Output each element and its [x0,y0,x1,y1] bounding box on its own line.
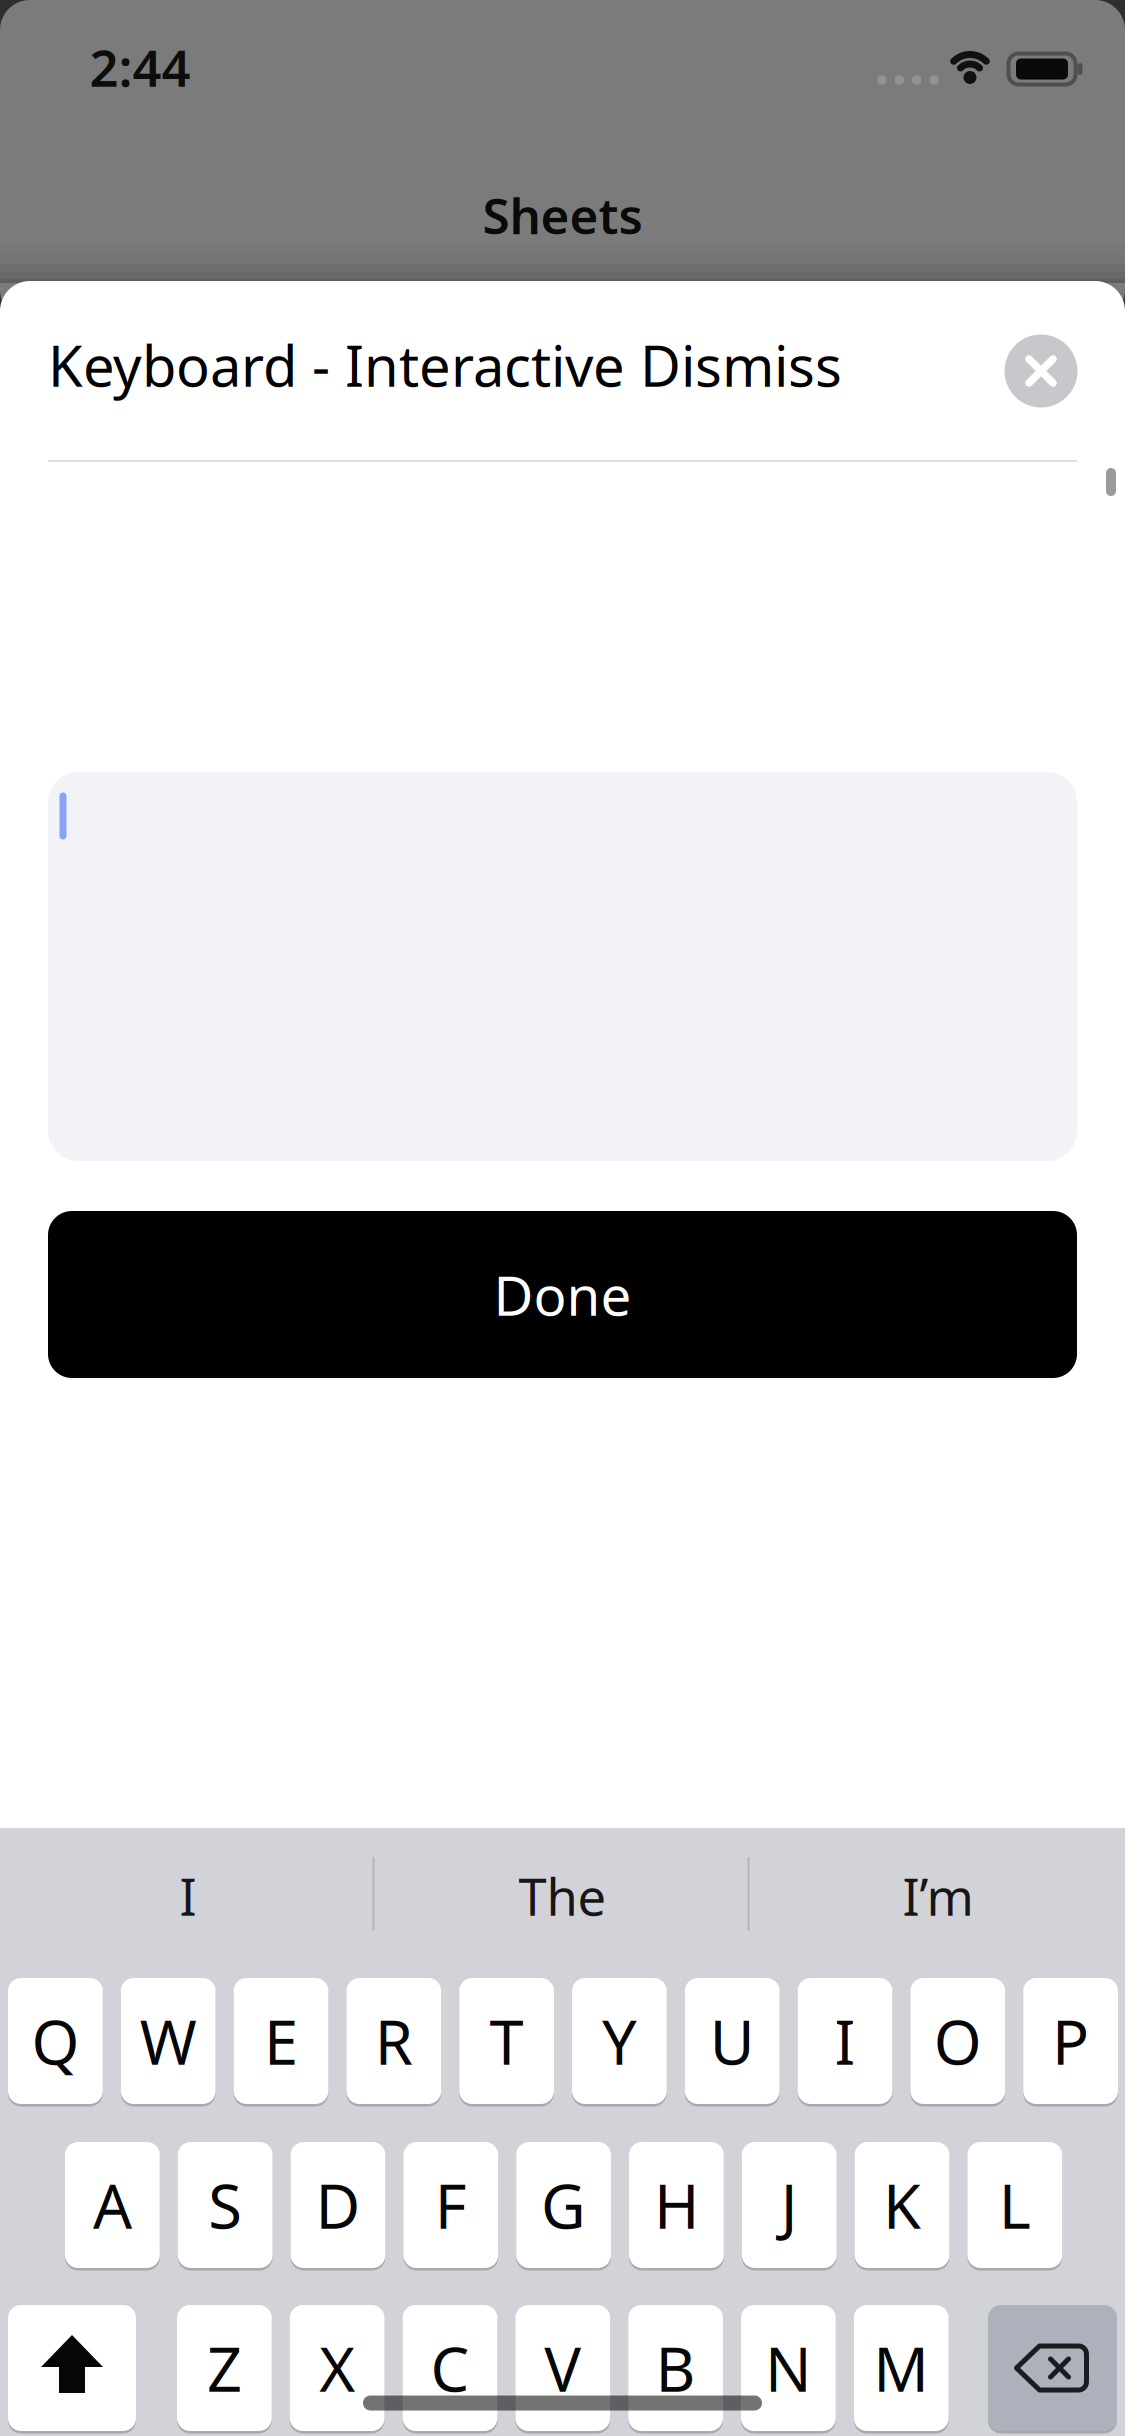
button[interactable]: C [403,2305,497,2431]
button[interactable]: Z [177,2305,272,2431]
button[interactable]: L [967,2142,1062,2268]
staticText: Z [207,2327,242,2409]
staticText: S [208,2164,242,2246]
button[interactable]: W [121,1978,216,2104]
button[interactable]: Close [1004,334,1077,407]
staticText: W [140,2000,197,2082]
staticText: K [883,2164,921,2246]
button[interactable]: B [628,2305,723,2431]
staticText: G [541,2164,586,2246]
button[interactable]: N [741,2305,836,2431]
staticText: Done [493,1258,631,1331]
button[interactable]: I [5,1844,371,1948]
staticText: I’m [902,1862,973,1930]
button[interactable]: Done [48,1211,1077,1378]
staticText: E [264,2000,298,2082]
button[interactable]: The [379,1844,745,1948]
button[interactable]: E [234,1978,328,2104]
staticText: 2:44 [89,33,190,101]
button[interactable]: I’m [755,1844,1121,1948]
button[interactable]: M [854,2305,949,2431]
button[interactable]: Shift [8,2305,136,2431]
staticText: A [93,2164,132,2246]
button[interactable]: P [1023,1978,1118,2104]
button[interactable]: F [403,2142,498,2268]
button[interactable]: J [742,2142,837,2268]
button[interactable]: U [685,1978,780,2104]
staticText: U [710,2000,755,2082]
staticText: Q [31,2000,79,2082]
staticText: The [518,1862,606,1930]
staticText: D [315,2164,360,2246]
staticText: Y [602,2000,637,2082]
button[interactable]: A [65,2142,160,2268]
staticText: T [490,2000,524,2082]
staticText: Keyboard - Interactive Dismiss [48,328,842,402]
staticText: H [654,2164,699,2246]
staticText: V [544,2327,581,2409]
button[interactable]: X [290,2305,385,2431]
button[interactable]: O [910,1978,1005,2104]
staticText: R [375,2000,413,2082]
staticText: F [435,2164,467,2246]
button[interactable]: Delete [988,2305,1117,2431]
button[interactable]: D [291,2142,385,2268]
staticText: L [999,2164,1031,2246]
button[interactable]: H [629,2142,724,2268]
staticText: J [781,2164,798,2246]
staticText: M [873,2327,929,2409]
staticText: I [179,1862,196,1930]
button[interactable]: I [798,1978,892,2104]
staticText: C [430,2327,469,2409]
staticText: Sheets [482,182,642,248]
button[interactable]: K [855,2142,949,2268]
button[interactable]: Y [572,1978,667,2104]
staticText: O [934,2000,982,2082]
staticText: X [319,2327,355,2409]
button[interactable]: S [178,2142,273,2268]
staticText: B [656,2327,696,2409]
button[interactable]: T [459,1978,554,2104]
button[interactable]: Q [8,1978,103,2104]
button[interactable]: R [346,1978,441,2104]
staticText: P [1052,2000,1089,2082]
button[interactable]: V [515,2305,610,2431]
staticText: I [834,2000,855,2082]
staticText: N [765,2327,812,2409]
button[interactable]: G [516,2142,611,2268]
